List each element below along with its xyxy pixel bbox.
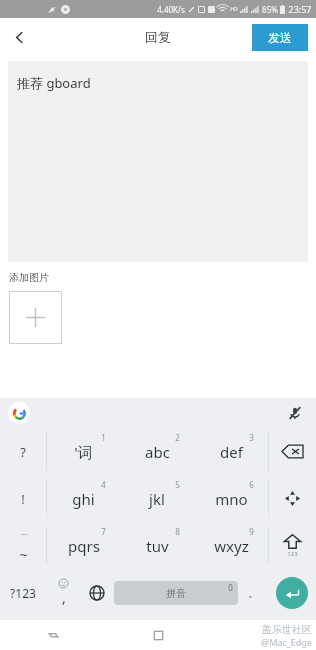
staticText: 123 xyxy=(287,550,298,558)
staticText: 9 xyxy=(249,526,254,537)
staticText: ?123 xyxy=(10,585,36,601)
staticText: 发送 xyxy=(268,30,292,45)
button[interactable]: pqrs xyxy=(47,522,120,569)
button[interactable]: dpad xyxy=(269,475,316,522)
button[interactable]: mno xyxy=(194,475,268,522)
button[interactable]: Back xyxy=(211,620,316,650)
staticText: 85% xyxy=(262,4,278,15)
staticText: 2 xyxy=(175,432,180,443)
button[interactable]: bksp xyxy=(269,428,316,475)
staticText: pqrs xyxy=(68,536,100,556)
button[interactable]: ?123 xyxy=(0,569,46,616)
staticText: wxyz xyxy=(214,536,249,556)
button[interactable]: 推荐 gboard xyxy=(8,61,308,262)
staticText: 0 xyxy=(228,582,233,593)
button[interactable]: wxyz xyxy=(194,522,268,569)
staticText: 8 xyxy=(175,526,180,537)
staticText: 盖乐世社区 xyxy=(262,623,312,636)
button[interactable]: Recents xyxy=(0,620,106,650)
staticText: 23:57 xyxy=(288,3,312,15)
button[interactable]: ghi xyxy=(47,475,120,522)
button[interactable]: 拼音 xyxy=(114,581,238,605)
staticText: , xyxy=(62,588,66,607)
button[interactable]: tuv xyxy=(120,522,194,569)
button[interactable]: '词 xyxy=(47,428,120,475)
button[interactable]: ? xyxy=(0,428,46,475)
staticText: 4.40K/s xyxy=(157,4,185,15)
staticText: 。 xyxy=(248,586,259,600)
button[interactable]: Home xyxy=(106,620,211,650)
staticText: 推荐 gboard xyxy=(17,74,91,92)
staticText: @Mac_Edge xyxy=(261,636,312,648)
staticText: 拼音 xyxy=(166,587,186,600)
staticText: 3 xyxy=(249,432,254,443)
staticText: 5 xyxy=(175,479,180,490)
button[interactable]: Language xyxy=(80,569,114,616)
staticText: mno xyxy=(215,489,248,509)
button[interactable]: Back xyxy=(0,18,38,56)
button[interactable]: 发送 xyxy=(252,24,308,51)
staticText: 6 xyxy=(249,479,254,490)
button[interactable]: shift xyxy=(269,522,316,569)
staticText: 回复 xyxy=(145,29,171,45)
button[interactable]: 。 xyxy=(238,569,268,616)
staticText: '词 xyxy=(74,442,93,462)
staticText: abc xyxy=(145,442,170,462)
staticText: HD xyxy=(230,6,238,13)
staticText: 7 xyxy=(101,526,106,537)
staticText: ··· xyxy=(20,528,28,540)
button[interactable]: def xyxy=(194,428,268,475)
staticText: ~ xyxy=(19,545,28,564)
staticText: 4 xyxy=(101,479,106,490)
button[interactable]: abc xyxy=(120,428,194,475)
staticText: ! xyxy=(21,490,25,508)
staticText: def xyxy=(220,442,243,462)
button[interactable]: ! xyxy=(0,475,46,522)
staticText: 1 xyxy=(101,432,106,443)
button[interactable]: Google xyxy=(8,402,30,424)
staticText: tuv xyxy=(146,536,169,556)
button[interactable]: Microphone off xyxy=(284,402,306,424)
button[interactable]: ··· xyxy=(0,522,46,569)
button[interactable]: , xyxy=(46,569,80,616)
button[interactable]: jkl xyxy=(120,475,194,522)
staticText: 添加图片 xyxy=(9,271,49,284)
staticText: jkl xyxy=(149,489,165,509)
button[interactable]: Add image xyxy=(9,291,62,344)
staticText: ? xyxy=(20,443,26,461)
button[interactable]: Enter xyxy=(276,577,308,609)
staticText: ghi xyxy=(72,489,95,509)
